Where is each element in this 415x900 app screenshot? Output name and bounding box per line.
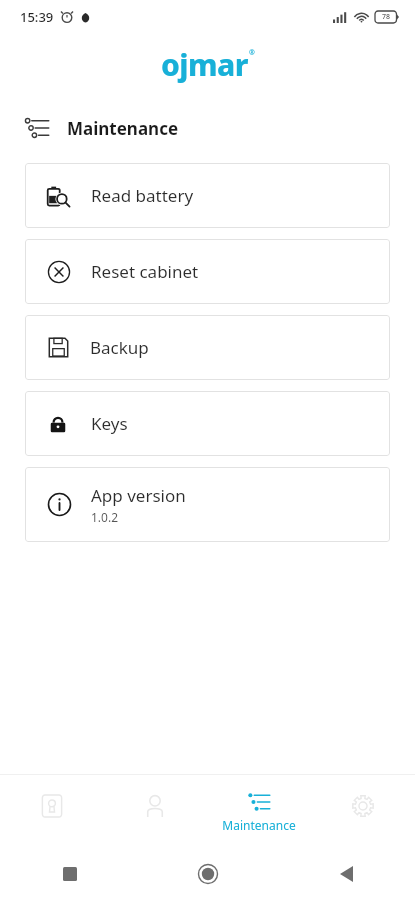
button[interactable]: Maintenance: [207, 775, 311, 848]
button[interactable]: Lockers: [0, 775, 103, 848]
staticText: ojmar: [161, 44, 248, 85]
button[interactable]: Keys: [25, 391, 390, 456]
staticText: App version: [91, 484, 186, 507]
staticText: 1.0.2: [91, 509, 119, 525]
staticText: Backup: [90, 336, 149, 359]
button[interactable]: Backup: [25, 315, 390, 380]
staticText: ®: [249, 48, 255, 58]
button[interactable]: App version: [25, 467, 390, 542]
staticText: Read battery: [91, 184, 194, 207]
button[interactable]: Read battery: [25, 163, 390, 228]
button[interactable]: Settings: [311, 775, 415, 848]
staticText: Maintenance: [222, 817, 296, 833]
staticText: Maintenance: [67, 117, 179, 140]
button[interactable]: Reset cabinet: [25, 239, 390, 304]
staticText: 15:39: [20, 8, 54, 26]
staticText: Reset cabinet: [91, 260, 199, 283]
staticText: 78: [382, 12, 391, 22]
staticText: Keys: [91, 412, 128, 435]
